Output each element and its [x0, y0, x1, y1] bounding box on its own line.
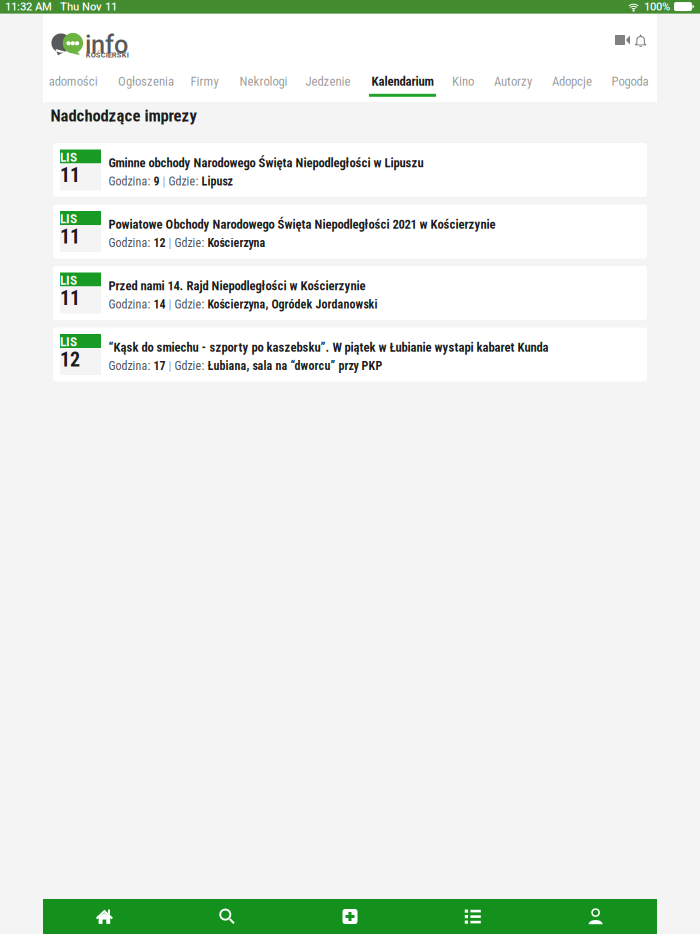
staticText: LIS [60, 149, 77, 165]
staticText: Kino [452, 74, 474, 89]
staticText: Kościerzyna, Ogródek Jordanowski [207, 297, 377, 312]
staticText: Ogłoszenia [118, 74, 174, 89]
button[interactable]: Search [166, 899, 289, 934]
staticText: Gdzie: [174, 236, 207, 250]
staticText: 11 [60, 163, 80, 187]
staticText: Thu Nov 11 [60, 0, 117, 13]
staticText: Nadchodzące imprezy [50, 106, 196, 125]
staticText: Jedzenie [305, 74, 350, 89]
staticText: 11 [60, 225, 80, 248]
staticText: | [165, 297, 174, 312]
staticText: info [85, 30, 128, 60]
staticText: Łubiana, sala na “dworcu” przy PKP [207, 359, 382, 373]
staticText: LIS [60, 211, 77, 227]
staticText: Autorzy [494, 74, 532, 89]
staticText: 100% [644, 0, 670, 13]
staticText: 12 [60, 348, 80, 371]
staticText: 12 [153, 236, 165, 250]
staticText: | [165, 236, 174, 250]
staticText: | [159, 174, 168, 189]
staticText: Pogoda [611, 74, 648, 89]
staticText: Firmy [190, 74, 218, 89]
staticText: Godzina: [108, 174, 153, 189]
button[interactable]: Jedzenie [303, 74, 353, 98]
staticText: Godzina: [108, 297, 153, 312]
staticText: 11:32 AM [5, 0, 52, 13]
button[interactable]: Video [615, 33, 631, 48]
staticText: KOŚCIERSKI [86, 50, 129, 59]
staticText: Godzina: [108, 359, 153, 373]
staticText: | [165, 359, 174, 373]
staticText: 17 [153, 359, 165, 373]
staticText: Przed nami 14. Rajd Niepodległości w Koś… [108, 279, 365, 293]
button[interactable]: List [411, 899, 534, 934]
staticText: LIS [60, 272, 77, 288]
staticText: Kalendarium [371, 74, 433, 89]
button[interactable]: Autorzy [491, 74, 535, 98]
button[interactable]: Kalendarium [369, 74, 436, 98]
staticText: Gdzie: [174, 297, 207, 312]
staticText: Nekrologi [239, 74, 287, 89]
button[interactable]: LIS [53, 266, 647, 320]
staticText: Adopcje [552, 74, 592, 89]
button[interactable]: Pogoda [609, 74, 651, 98]
button[interactable]: Ogłoszenia [116, 74, 176, 98]
staticText: Godzina: [108, 236, 153, 250]
button[interactable]: Adopcje [549, 74, 595, 98]
staticText: “Kąsk do smiechu - szporty po kaszebsku”… [108, 340, 548, 355]
button[interactable]: Kino [450, 74, 476, 98]
button[interactable]: LIS [53, 143, 647, 197]
button[interactable]: adomości [46, 74, 100, 98]
staticText: Gdzie: [174, 359, 207, 373]
button[interactable]: Notifications [634, 35, 647, 47]
staticText: 11 [60, 286, 80, 310]
button[interactable]: Home [43, 899, 166, 934]
staticText: Gminne obchody Narodowego Święta Niepodl… [108, 156, 423, 170]
staticText: Kościerzyna [207, 236, 265, 250]
staticText: 9 [153, 174, 159, 189]
staticText: adomości [49, 74, 98, 89]
button[interactable]: Add [289, 899, 411, 934]
button[interactable]: Firmy [188, 74, 221, 98]
button[interactable]: LIS [53, 204, 647, 258]
button[interactable]: Profile [534, 899, 657, 934]
staticText: Lipusz [201, 174, 232, 189]
button[interactable]: Nekrologi [237, 74, 290, 98]
staticText: 14 [153, 297, 165, 312]
staticText: LIS [60, 334, 77, 350]
staticText: Gdzie: [168, 174, 201, 189]
staticText: Powiatowe Obchody Narodowego Święta Niep… [108, 217, 495, 232]
button[interactable]: LIS [53, 327, 647, 381]
